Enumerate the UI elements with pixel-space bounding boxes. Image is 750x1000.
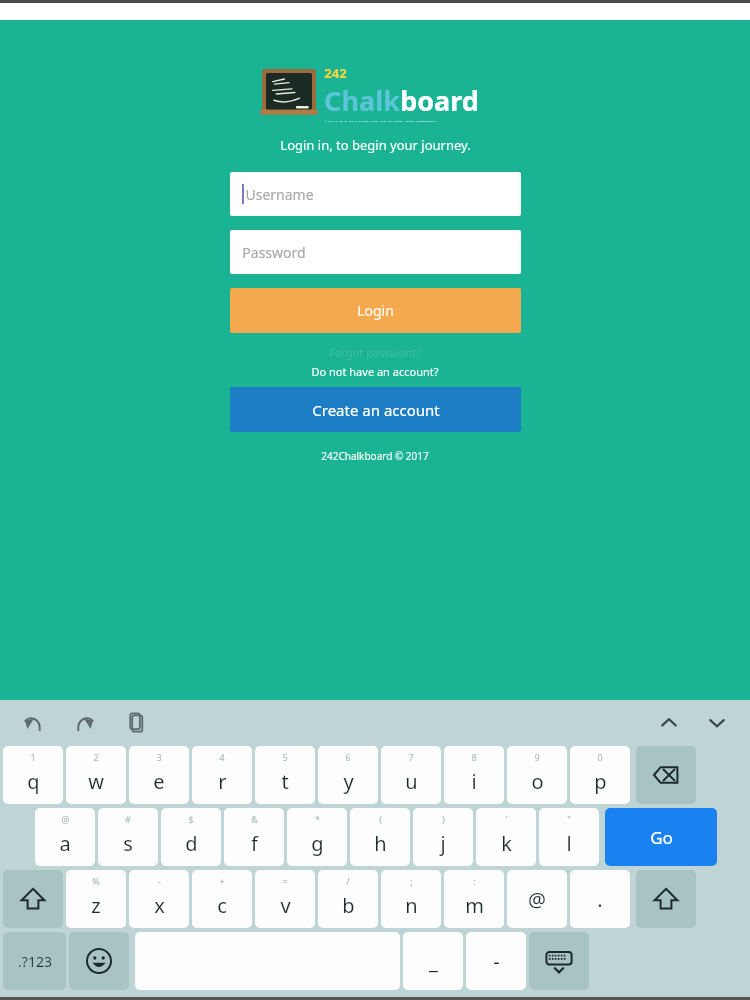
- button[interactable]: 6: [318, 746, 378, 804]
- button[interactable]: 0: [570, 746, 630, 804]
- staticText: u: [405, 768, 418, 795]
- staticText: 4: [219, 751, 225, 763]
- button[interactable]: -: [466, 932, 526, 990]
- staticText: +: [219, 875, 225, 887]
- staticText: v: [280, 892, 291, 919]
- staticText: *: [315, 813, 320, 825]
- button[interactable]: =: [255, 870, 315, 928]
- button[interactable]: Create an account: [230, 387, 521, 432]
- staticText: 7: [408, 751, 414, 763]
- button[interactable]: -: [129, 870, 189, 928]
- button[interactable]: Backspace: [636, 746, 696, 804]
- staticText: d: [185, 830, 198, 857]
- staticText: -: [493, 948, 500, 975]
- staticText: Do not have an account?: [311, 364, 439, 379]
- staticText: f: [251, 830, 258, 857]
- staticText: -: [158, 875, 161, 887]
- button[interactable]: .: [570, 870, 630, 928]
- staticText: .: [597, 886, 603, 913]
- button[interactable]: 3: [129, 746, 189, 804]
- button[interactable]: Previous: [654, 708, 684, 738]
- staticText: w: [88, 768, 104, 795]
- staticText: =: [282, 875, 288, 887]
- button[interactable]: 7: [381, 746, 441, 804]
- button[interactable]: Shift: [636, 870, 696, 928]
- staticText: &: [251, 813, 258, 825]
- button[interactable]: 2: [66, 746, 126, 804]
- button[interactable]: $: [161, 808, 221, 866]
- staticText: Login in, to begin your journey.: [280, 136, 471, 154]
- button[interactable]: ): [413, 808, 473, 866]
- button[interactable]: Undo: [18, 708, 48, 738]
- button[interactable]: #: [98, 808, 158, 866]
- button[interactable]: .?123: [3, 932, 66, 990]
- staticText: %: [92, 875, 100, 887]
- button[interactable]: %: [66, 870, 126, 928]
- button[interactable]: 5: [255, 746, 315, 804]
- staticText: @: [528, 886, 546, 913]
- staticText: 2: [93, 751, 99, 763]
- button[interactable]: 1: [3, 746, 63, 804]
- staticText: Forgot password?: [329, 345, 421, 360]
- staticText: $: [188, 813, 194, 825]
- staticText: q: [27, 768, 40, 795]
- button[interactable]: 4: [192, 746, 252, 804]
- button[interactable]: Username: [230, 172, 521, 216]
- staticText: Create an account: [312, 400, 440, 420]
- button[interactable]: ;: [381, 870, 441, 928]
- staticText: /: [346, 875, 350, 887]
- staticText: t: [281, 768, 289, 795]
- button[interactable]: Next: [702, 708, 732, 738]
- button[interactable]: &: [224, 808, 284, 866]
- staticText: Chalk: [324, 82, 400, 119]
- staticText: ;: [410, 875, 413, 887]
- button[interactable]: Redo: [70, 708, 100, 738]
- staticText: ): [442, 813, 445, 825]
- staticText: ": [567, 813, 571, 825]
- button[interactable]: _: [403, 932, 463, 990]
- button[interactable]: Clipboard: [122, 708, 152, 738]
- button[interactable]: ": [539, 808, 599, 866]
- staticText: Go: [650, 826, 673, 849]
- button[interactable]: @: [507, 870, 567, 928]
- button[interactable]: Shift: [3, 870, 63, 928]
- staticText: g: [311, 830, 324, 857]
- button[interactable]: ': [476, 808, 536, 866]
- staticText: 1: [30, 751, 36, 763]
- staticText: z: [91, 892, 101, 919]
- button[interactable]: /: [318, 870, 378, 928]
- staticText: x: [154, 892, 165, 919]
- button[interactable]: 9: [507, 746, 567, 804]
- staticText: 5: [282, 751, 288, 763]
- staticText: 0: [597, 751, 603, 763]
- button[interactable]: :: [444, 870, 504, 928]
- staticText: l: [566, 830, 572, 857]
- staticText: h: [374, 830, 387, 857]
- staticText: a: [59, 830, 71, 857]
- staticText: o: [531, 768, 544, 795]
- button[interactable]: +: [192, 870, 252, 928]
- button[interactable]: Login: [230, 288, 521, 333]
- staticText: y: [343, 768, 354, 795]
- staticText: (: [379, 813, 382, 825]
- staticText: 3: [156, 751, 162, 763]
- staticText: _: [429, 948, 438, 975]
- staticText: e: [153, 768, 165, 795]
- button[interactable]: Go: [605, 808, 717, 866]
- button[interactable]: Password: [230, 230, 521, 274]
- button[interactable]: @: [35, 808, 95, 866]
- button[interactable]: (: [350, 808, 410, 866]
- staticText: r: [218, 768, 227, 795]
- button[interactable]: 8: [444, 746, 504, 804]
- staticText: Password: [242, 243, 306, 262]
- staticText: n: [405, 892, 418, 919]
- staticText: 242Chalkboard © 2017: [321, 449, 429, 463]
- staticText: #: [125, 813, 131, 825]
- staticText: ': [505, 813, 508, 825]
- button[interactable]: Emoji: [69, 932, 129, 990]
- button[interactable]: Hide keyboard: [529, 932, 589, 990]
- button[interactable]: *: [287, 808, 347, 866]
- staticText: board: [400, 82, 479, 119]
- staticText: p: [594, 768, 607, 795]
